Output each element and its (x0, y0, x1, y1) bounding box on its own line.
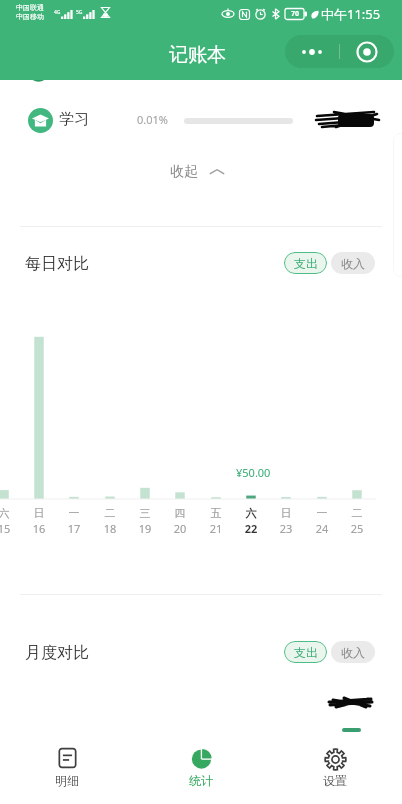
staticText: 设置 (323, 773, 347, 788)
button[interactable]: 明细 (0, 726, 134, 804)
staticText: 支出 (294, 645, 318, 660)
button[interactable]: 学习 (0, 96, 402, 144)
button[interactable]: 设置 (268, 726, 402, 804)
staticText: 六 (234, 506, 268, 520)
button[interactable]: 统计 (134, 726, 268, 804)
staticText: 支出 (294, 256, 318, 271)
button[interactable]: Close app (340, 35, 394, 68)
staticText: 25 (340, 521, 374, 536)
staticText: 统计 (189, 773, 213, 788)
button[interactable]: 支出 (284, 641, 327, 663)
staticText: 24 (305, 521, 339, 536)
staticText: 明细 (55, 773, 79, 788)
button[interactable]: 收入 (331, 252, 375, 274)
staticText: 每日对比 (25, 254, 89, 274)
staticText: 0.01% (137, 112, 168, 127)
button[interactable]: 支出 (284, 252, 327, 274)
staticText: 4G (54, 9, 61, 16)
staticText: 22 (234, 521, 268, 536)
button[interactable]: 收起 (170, 159, 230, 185)
staticText: 二 (93, 506, 127, 520)
staticText: 四 (163, 506, 197, 520)
staticText: ¥50.00 (236, 465, 271, 480)
staticText: 日 (269, 506, 303, 520)
staticText: 收入 (341, 256, 365, 271)
button[interactable]: 收入 (331, 641, 375, 663)
staticText: 21 (199, 521, 233, 536)
staticText: 日 (22, 506, 56, 520)
staticText: 二 (340, 506, 374, 520)
staticText: 17 (57, 521, 91, 536)
button[interactable]: More options (285, 35, 339, 68)
staticText: 记账本 (169, 43, 226, 67)
staticText: 19 (128, 521, 162, 536)
staticText: 收起 (170, 163, 198, 181)
staticText: 16 (22, 521, 56, 536)
staticText: 收入 (341, 645, 365, 660)
staticText: 中国移动 (16, 12, 44, 21)
staticText: 一 (57, 506, 91, 520)
staticText: 20 (163, 521, 197, 536)
staticText: 学习 (59, 110, 89, 129)
staticText: 15 (0, 521, 21, 536)
staticText: 月度对比 (25, 643, 89, 663)
staticText: 六 (0, 506, 21, 520)
staticText: 18 (93, 521, 127, 536)
staticText: 一 (305, 506, 339, 520)
staticText: 5G (76, 9, 83, 16)
staticText: 70 (291, 9, 300, 19)
staticText: 三 (128, 506, 162, 520)
staticText: 中午11:55 (321, 5, 381, 23)
staticText: 23 (269, 521, 303, 536)
staticText: 五 (199, 506, 233, 520)
staticText: 中国联通 (16, 3, 44, 12)
